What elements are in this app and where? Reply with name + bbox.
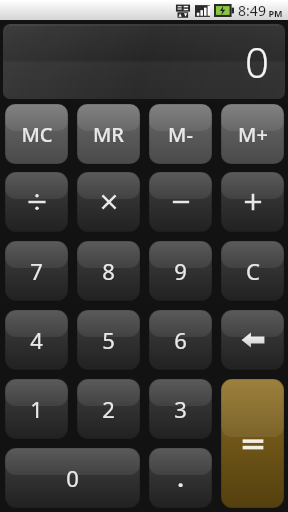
- button[interactable]: Equals: [221, 379, 284, 508]
- staticText: 2: [102, 394, 115, 424]
- button[interactable]: 1: [5, 379, 68, 439]
- button[interactable]: 5: [77, 310, 140, 370]
- staticText: 1: [30, 394, 43, 424]
- button[interactable]: M+: [221, 104, 284, 164]
- button[interactable]: Backspace: [221, 310, 284, 370]
- staticText: 8:49: [238, 1, 266, 20]
- button[interactable]: Plus: [221, 172, 284, 232]
- button[interactable]: M-: [149, 104, 212, 164]
- button[interactable]: 7: [5, 241, 68, 301]
- button[interactable]: 2: [77, 379, 140, 439]
- button[interactable]: Minus: [149, 172, 212, 232]
- button[interactable]: 8: [77, 241, 140, 301]
- staticText: 5: [102, 325, 115, 355]
- staticText: 0: [66, 463, 79, 493]
- staticText: M+: [238, 121, 268, 148]
- button[interactable]: C: [221, 241, 284, 301]
- staticText: .: [177, 463, 184, 493]
- button[interactable]: 4: [5, 310, 68, 370]
- button[interactable]: 0: [5, 448, 140, 508]
- button[interactable]: 3: [149, 379, 212, 439]
- staticText: 4: [30, 325, 43, 355]
- staticText: 8: [102, 256, 115, 286]
- staticText: C: [246, 256, 260, 286]
- button[interactable]: MC: [5, 104, 68, 164]
- staticText: MC: [21, 121, 53, 148]
- staticText: PM: [268, 7, 283, 19]
- staticText: 9: [174, 256, 187, 286]
- staticText: M-: [168, 121, 193, 148]
- button[interactable]: MR: [77, 104, 140, 164]
- staticText: 6: [174, 325, 187, 355]
- staticText: 0: [245, 33, 269, 90]
- staticText: 7: [30, 256, 43, 286]
- staticText: 3: [174, 394, 187, 424]
- button[interactable]: .: [149, 448, 212, 508]
- staticText: MR: [93, 121, 124, 148]
- button[interactable]: 6: [149, 310, 212, 370]
- button[interactable]: Multiply: [77, 172, 140, 232]
- button[interactable]: Divide: [5, 172, 68, 232]
- button[interactable]: 9: [149, 241, 212, 301]
